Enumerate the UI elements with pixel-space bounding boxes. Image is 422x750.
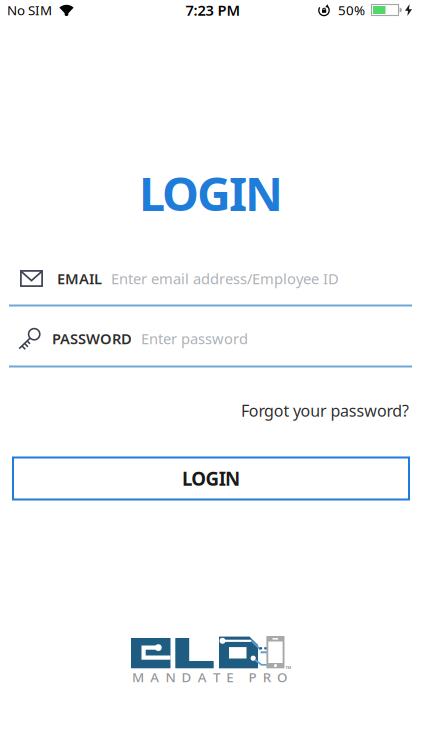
staticText: Enter password bbox=[141, 329, 248, 348]
staticText: LOGIN bbox=[182, 466, 240, 491]
staticText: No SIM bbox=[7, 1, 52, 19]
button[interactable]: Email, enter email address or Employee I… bbox=[0, 263, 422, 306]
staticText: TM bbox=[285, 665, 291, 670]
button[interactable]: LOGIN bbox=[12, 456, 410, 500]
staticText: Forgot your password? bbox=[241, 400, 409, 421]
staticText: 50% bbox=[338, 1, 365, 19]
button[interactable]: Password, enter password bbox=[0, 325, 422, 367]
button[interactable]: Forgot your password? bbox=[0, 400, 422, 421]
staticText: LOGIN bbox=[139, 162, 283, 224]
staticText: 7:23 PM bbox=[185, 0, 240, 20]
staticText: EMAIL bbox=[57, 269, 102, 288]
staticText: M A N D A T E P R O bbox=[132, 668, 287, 686]
staticText: Enter email address/Employee ID bbox=[111, 269, 339, 288]
staticText: PASSWORD bbox=[52, 329, 132, 348]
